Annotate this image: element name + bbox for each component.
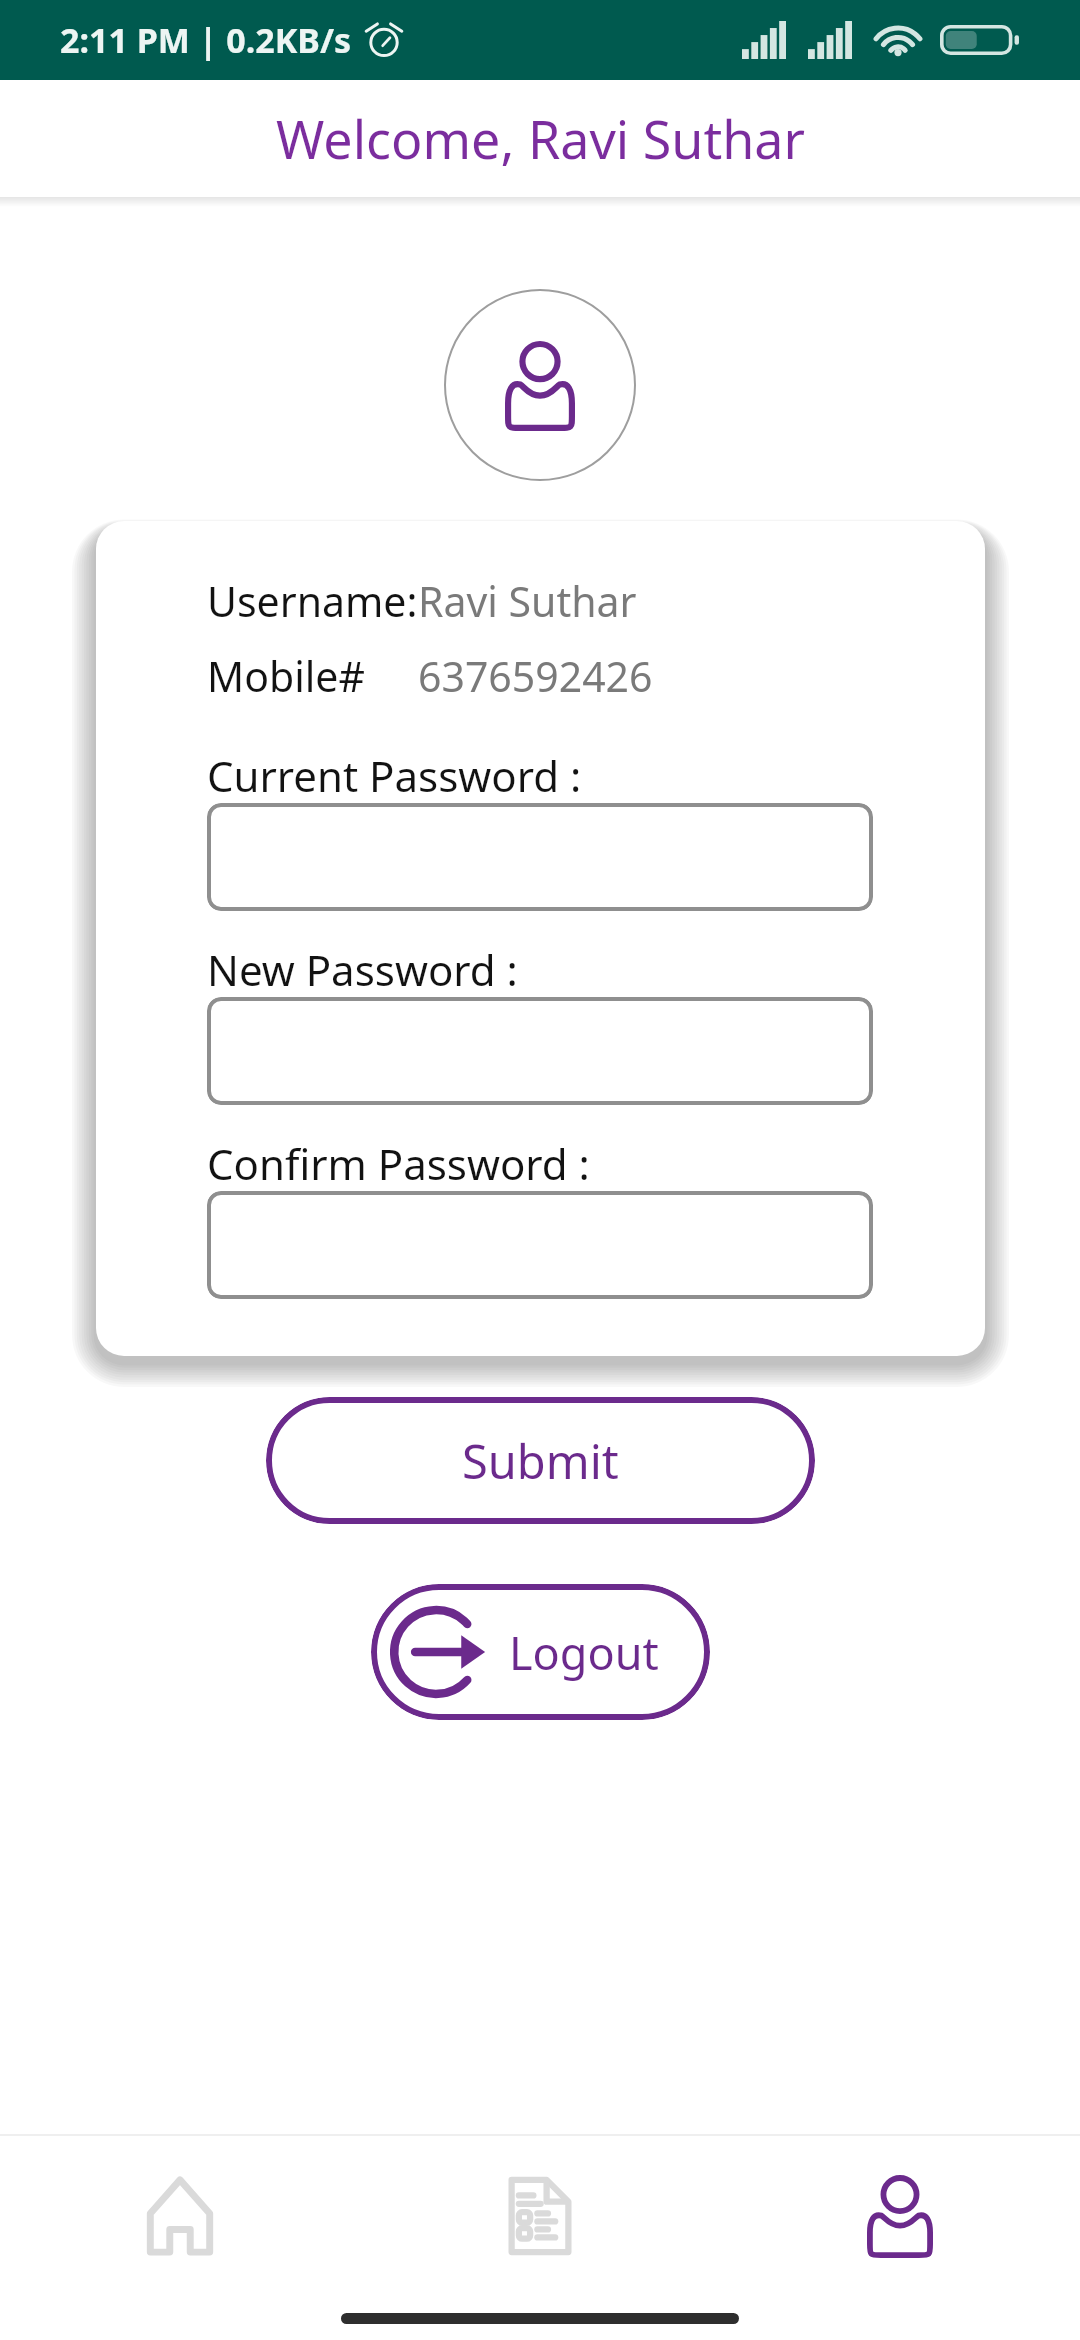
staticText: Submit	[462, 1429, 619, 1493]
staticText: 6376592426	[418, 648, 653, 704]
staticText: Mobile#	[207, 648, 365, 704]
staticText: Confirm Password :	[207, 1135, 590, 1187]
staticText: 2:11 PM | 0.2KB/s	[60, 17, 352, 63]
staticText: Logout	[509, 1622, 659, 1683]
staticText: Welcome, Ravi Suthar	[276, 103, 805, 174]
button[interactable]: Submit	[266, 1397, 815, 1524]
staticText: New Password :	[207, 941, 518, 993]
button[interactable]	[207, 803, 873, 911]
staticText: Current Password :	[207, 747, 582, 799]
button[interactable]: Documents	[360, 2136, 720, 2296]
button[interactable]	[207, 997, 873, 1105]
button[interactable]: Profile	[720, 2136, 1080, 2296]
button[interactable]: Home	[0, 2136, 360, 2296]
staticText: Ravi Suthar	[418, 573, 637, 629]
button[interactable]: Logout	[371, 1584, 710, 1720]
staticText: Username:	[207, 573, 418, 629]
button[interactable]	[207, 1191, 873, 1299]
